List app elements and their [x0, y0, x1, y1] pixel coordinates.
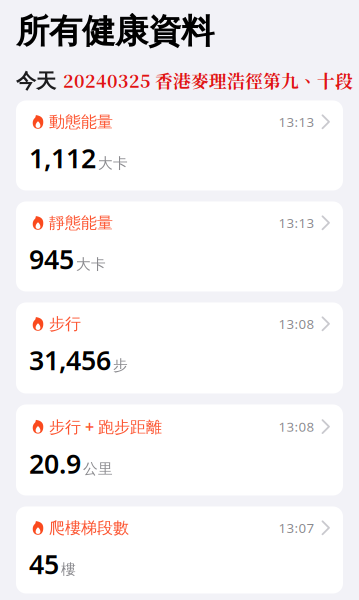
staticText: 20240325 香港麥理浩徑第九、十段 [63, 67, 353, 93]
staticText: 今天 [16, 69, 56, 93]
button[interactable]: 爬樓梯段數 [16, 506, 343, 593]
staticText: 13:08 [278, 315, 314, 333]
staticText: 樓 [61, 560, 76, 578]
staticText: 步行 + 跑步距離 [49, 416, 162, 437]
button[interactable]: 步行 + 跑步距離 [16, 404, 343, 495]
button[interactable]: 步行 [16, 302, 343, 393]
staticText: 所有健康資料 [16, 11, 214, 52]
staticText: 步行 [49, 314, 81, 334]
staticText: 步 [113, 356, 128, 374]
button[interactable]: 動態能量 [16, 100, 343, 190]
staticText: 45 [29, 546, 59, 581]
staticText: 13:13 [278, 214, 314, 232]
staticText: 945 [29, 241, 74, 276]
staticText: 13:13 [278, 113, 314, 131]
staticText: 爬樓梯段數 [49, 518, 129, 538]
staticText: 動態能量 [49, 112, 113, 132]
staticText: 13:07 [278, 519, 314, 537]
staticText: 大卡 [76, 255, 106, 273]
staticText: 20.9 [29, 446, 81, 481]
staticText: 13:08 [278, 418, 314, 435]
staticText: 31,456 [29, 342, 111, 377]
button[interactable]: 靜態能量 [16, 201, 343, 291]
staticText: 靜態能量 [49, 213, 113, 233]
staticText: 公里 [83, 460, 113, 478]
staticText: 大卡 [98, 154, 128, 172]
staticText: 1,112 [29, 140, 96, 175]
